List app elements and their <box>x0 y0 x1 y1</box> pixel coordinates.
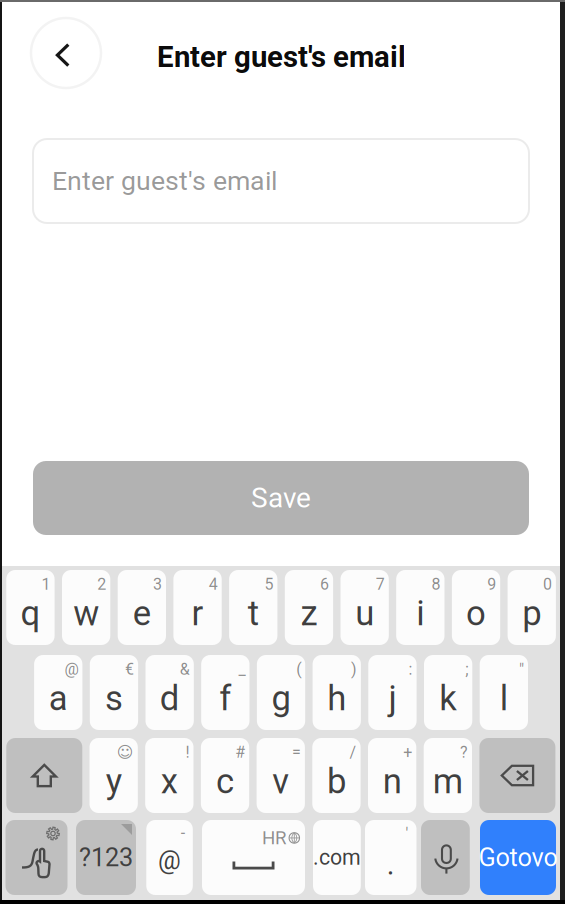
button[interactable]: + <box>368 738 416 813</box>
button[interactable]: 8 <box>396 570 444 645</box>
staticText: ? <box>460 743 468 762</box>
staticText: : <box>409 660 413 679</box>
button[interactable]: & <box>145 655 194 730</box>
button[interactable]: Backspace <box>479 738 555 813</box>
button[interactable]: dot com <box>313 820 361 895</box>
button[interactable]: 3 <box>118 570 166 645</box>
staticText: HR <box>262 827 287 849</box>
staticText: i <box>416 593 424 634</box>
button[interactable]: 6 <box>285 570 333 645</box>
staticText: v <box>272 761 289 802</box>
staticText: / <box>350 743 357 762</box>
staticText: ) <box>351 660 357 679</box>
staticText: l <box>500 678 508 719</box>
staticText: 2 <box>97 575 106 594</box>
button[interactable]: 2 <box>62 570 110 645</box>
button[interactable]: / <box>312 738 361 813</box>
button[interactable]: ( <box>257 655 305 730</box>
button[interactable]: Handwriting input <box>5 820 67 895</box>
staticText: e <box>133 593 151 634</box>
staticText: ; <box>465 660 468 679</box>
staticText: y <box>106 761 122 802</box>
staticText: 5 <box>264 575 273 594</box>
staticText: .com <box>313 845 361 870</box>
staticText: w <box>73 593 99 634</box>
staticText: + <box>403 743 412 762</box>
button[interactable]: ; <box>424 655 472 730</box>
staticText: c <box>216 761 234 802</box>
button[interactable]: € <box>90 655 138 730</box>
staticText: s <box>105 678 123 719</box>
button[interactable]: 1 <box>6 570 55 645</box>
staticText: & <box>180 660 190 679</box>
button[interactable]: # <box>201 738 249 813</box>
staticText: 6 <box>320 575 329 594</box>
staticText: 1 <box>42 575 51 594</box>
staticText: k <box>439 678 457 719</box>
button[interactable]: Shift <box>6 738 82 813</box>
staticText: g <box>272 678 291 719</box>
staticText: _ <box>238 660 245 679</box>
button[interactable]: = <box>257 738 305 813</box>
staticText: Save <box>251 482 311 514</box>
staticText: ( <box>296 660 301 679</box>
staticText: - <box>181 824 185 843</box>
staticText: b <box>327 761 346 802</box>
button[interactable]: ' <box>365 820 416 895</box>
staticText: u <box>355 593 374 634</box>
staticText: ☺ <box>117 743 134 762</box>
staticText: ! <box>185 743 189 762</box>
staticText: . <box>387 847 395 882</box>
staticText: h <box>327 678 346 719</box>
staticText: ?123 <box>79 843 133 872</box>
staticText: " <box>519 660 524 679</box>
staticText: z <box>300 593 317 634</box>
staticText: # <box>235 743 245 762</box>
staticText: p <box>522 593 541 634</box>
staticText: a <box>49 678 68 719</box>
staticText: n <box>383 761 402 802</box>
staticText: q <box>20 593 40 634</box>
button[interactable]: Symbols <box>76 820 136 895</box>
button[interactable]: _ <box>201 655 249 730</box>
staticText: ' <box>405 824 408 843</box>
button[interactable]: " <box>480 655 528 730</box>
staticText: 4 <box>209 575 218 594</box>
button[interactable]: 4 <box>173 570 222 645</box>
staticText: @ <box>158 846 181 875</box>
staticText: @ <box>64 660 78 679</box>
staticText: o <box>466 593 486 634</box>
button[interactable]: : <box>368 655 417 730</box>
button[interactable]: Voice input <box>421 820 470 895</box>
staticText: f <box>219 678 231 719</box>
staticText: 7 <box>376 575 385 594</box>
staticText: m <box>433 761 463 802</box>
staticText: Gotovo <box>478 843 557 872</box>
button[interactable]: 7 <box>340 570 389 645</box>
staticText: 3 <box>153 575 162 594</box>
button[interactable]: 0 <box>508 570 556 645</box>
staticText: r <box>192 593 204 634</box>
staticText: t <box>248 593 259 634</box>
button[interactable]: ! <box>145 738 193 813</box>
button[interactable]: - <box>146 820 193 895</box>
staticText: 8 <box>431 575 440 594</box>
button[interactable]: ) <box>313 655 361 730</box>
staticText: Enter guest's email <box>157 40 406 74</box>
button[interactable]: 5 <box>229 570 277 645</box>
button[interactable]: Back <box>31 18 101 88</box>
staticText: 0 <box>543 575 552 594</box>
staticText: j <box>388 678 396 719</box>
button[interactable]: Space <box>202 820 305 895</box>
staticText: € <box>125 660 134 679</box>
button[interactable]: 9 <box>452 570 500 645</box>
staticText: 9 <box>487 575 496 594</box>
button[interactable]: ? <box>424 738 472 813</box>
button[interactable]: Save <box>33 461 529 535</box>
button[interactable]: @ <box>34 655 82 730</box>
staticText: = <box>292 743 301 762</box>
staticText: x <box>161 761 178 802</box>
staticText: Enter guest's email <box>52 165 277 197</box>
button[interactable]: Done <box>480 820 556 895</box>
button[interactable]: ☺ <box>89 738 138 813</box>
